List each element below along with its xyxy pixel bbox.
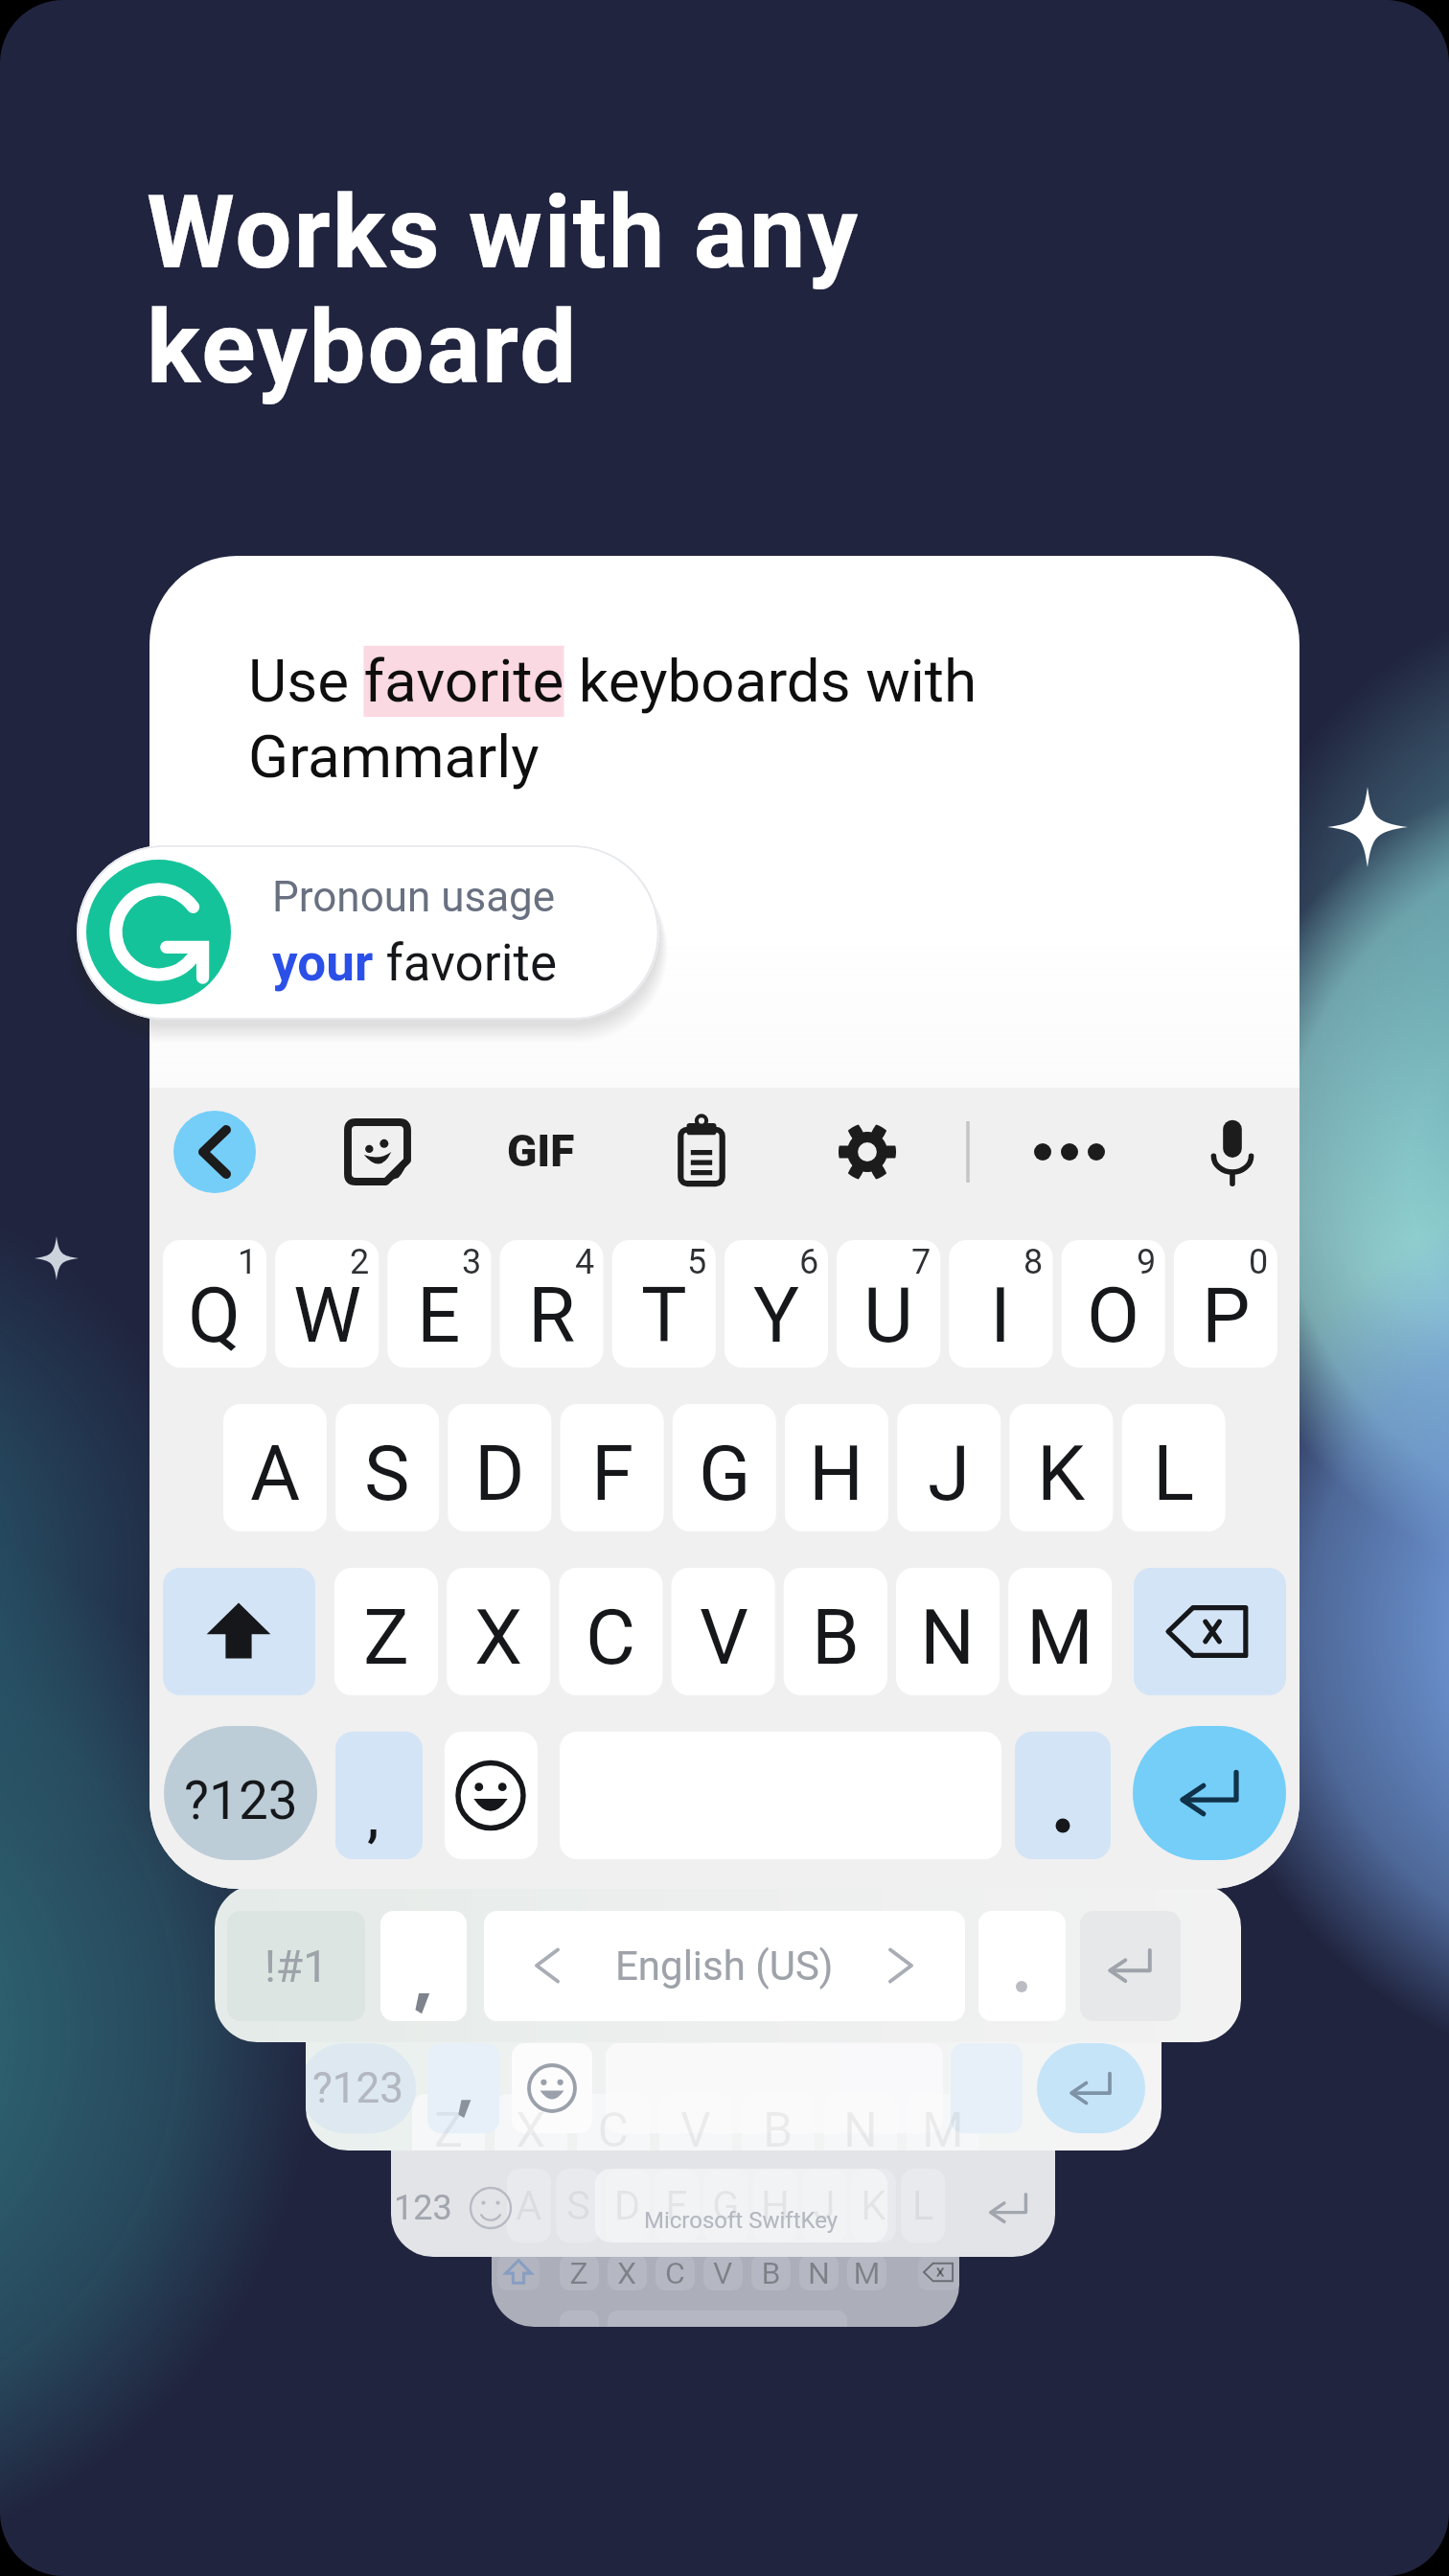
button[interactable]: Emoji: [445, 1732, 538, 1859]
button[interactable]: S: [335, 1410, 439, 1537]
staticText: W: [293, 1271, 361, 1361]
staticText: Microsoft SwiftKey: [644, 2207, 839, 2234]
button[interactable]: R: [500, 1252, 604, 1379]
staticText: P: [1202, 1271, 1251, 1361]
staticText: ,: [367, 1789, 379, 1848]
button[interactable]: Comma: [335, 1732, 423, 1859]
button[interactable]: Period: [1015, 1732, 1111, 1859]
staticText: C: [586, 1593, 636, 1683]
button[interactable]: F: [561, 1410, 664, 1537]
staticText: O: [1087, 1271, 1140, 1361]
staticText: V: [700, 1593, 748, 1683]
button[interactable]: Backspace: [1134, 1568, 1286, 1695]
staticText: 123: [394, 2188, 452, 2228]
button[interactable]: I: [949, 1252, 1052, 1379]
button[interactable]: V: [672, 1574, 775, 1701]
button[interactable]: M: [1008, 1574, 1112, 1701]
staticText: 6: [799, 1242, 819, 1282]
staticText: A: [250, 1429, 301, 1519]
staticText: 2: [350, 1242, 370, 1282]
button[interactable]: G: [673, 1410, 776, 1537]
button[interactable]: Enter: [1134, 1732, 1286, 1859]
button[interactable]: Clipboard: [657, 1108, 746, 1196]
button[interactable]: Q: [163, 1252, 266, 1379]
button[interactable]: E: [387, 1252, 491, 1379]
staticText: U: [863, 1271, 913, 1361]
button[interactable]: U: [837, 1252, 940, 1379]
staticText: 7: [911, 1242, 931, 1282]
button[interactable]: Voice input: [1188, 1108, 1276, 1196]
staticText: Q: [188, 1271, 241, 1361]
staticText: N: [920, 1593, 976, 1683]
button[interactable]: D: [448, 1410, 551, 1537]
staticText: X: [474, 1593, 523, 1683]
button[interactable]: N: [896, 1574, 1000, 1701]
staticText: 3: [462, 1242, 482, 1282]
staticText: your favorite: [272, 933, 558, 993]
staticText: 9: [1137, 1242, 1157, 1282]
button[interactable]: Z: [334, 1574, 438, 1701]
staticText: G: [699, 1429, 751, 1519]
button[interactable]: X: [447, 1574, 550, 1701]
staticText: English (US): [615, 1943, 834, 1989]
staticText: 8: [1023, 1242, 1044, 1282]
button[interactable]: J: [897, 1410, 1000, 1537]
staticText: R: [528, 1271, 576, 1361]
staticText: 4: [575, 1242, 595, 1282]
button[interactable]: More options: [1018, 1108, 1121, 1196]
staticText: F: [591, 1429, 634, 1519]
button[interactable]: K: [1009, 1410, 1113, 1537]
button[interactable]: Back: [173, 1111, 256, 1193]
button[interactable]: Shift: [163, 1568, 315, 1695]
staticText: B: [812, 1593, 860, 1683]
button[interactable]: Pronoun usage: [77, 845, 659, 1020]
staticText: Use favorite keyboards with Grammarly: [248, 646, 977, 792]
staticText: Y: [753, 1271, 800, 1361]
button[interactable]: L: [1122, 1410, 1226, 1537]
staticText: T: [641, 1271, 687, 1361]
staticText: H: [809, 1429, 864, 1519]
staticText: I: [990, 1271, 1011, 1361]
staticText: D: [474, 1429, 525, 1519]
button[interactable]: Stickers: [333, 1108, 422, 1196]
button[interactable]: B: [784, 1574, 887, 1701]
staticText: 1: [238, 1242, 258, 1282]
staticText: K: [1037, 1429, 1086, 1519]
button[interactable]: O: [1062, 1252, 1165, 1379]
staticText: Pronoun usage: [272, 872, 556, 922]
button[interactable]: H: [785, 1410, 888, 1537]
staticText: L: [1153, 1429, 1195, 1519]
staticText: ?123: [184, 1770, 298, 1831]
staticText: E: [417, 1271, 461, 1361]
staticText: 5: [687, 1242, 707, 1282]
staticText: 0: [1249, 1242, 1269, 1282]
button[interactable]: T: [612, 1252, 716, 1379]
staticText: J: [928, 1429, 971, 1519]
button[interactable]: A: [223, 1410, 327, 1537]
button[interactable]: W: [275, 1252, 379, 1379]
button[interactable]: Settings: [823, 1108, 911, 1196]
button[interactable]: ?123: [164, 1736, 317, 1864]
staticText: M: [1026, 1593, 1093, 1683]
staticText: Z: [363, 1593, 409, 1683]
button[interactable]: GIF: [495, 1108, 584, 1196]
staticText: ?123: [312, 2063, 403, 2113]
staticText: GIF: [507, 1125, 575, 1177]
staticText: S: [364, 1429, 410, 1519]
button[interactable]: Y: [724, 1252, 828, 1379]
button[interactable]: P: [1174, 1252, 1277, 1379]
button[interactable]: C: [559, 1574, 662, 1701]
staticText: Works with any keyboard: [147, 174, 861, 407]
staticText: !#1: [264, 1941, 329, 1992]
